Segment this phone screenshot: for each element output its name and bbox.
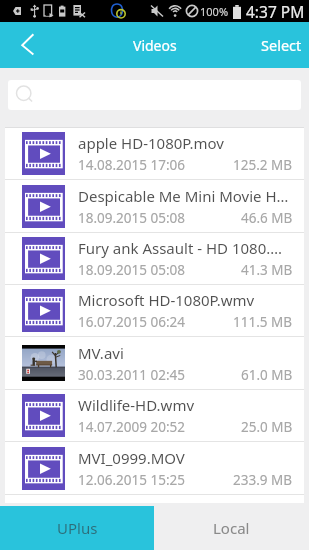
- button[interactable]: Despicable Me Mini Movie H…: [5, 180, 304, 232]
- staticText: 12.06.2015 15:25: [78, 471, 186, 489]
- staticText: 14.07.2009 20:52: [78, 418, 186, 436]
- staticText: UPlus: [57, 518, 98, 538]
- button[interactable]: Back: [0, 22, 48, 68]
- staticText: Local: [213, 518, 250, 538]
- button[interactable]: Microsoft HD-1080P.wmv: [5, 285, 304, 336]
- staticText: 18.09.2015 05:08: [78, 261, 186, 279]
- staticText: 111.5 MB: [233, 313, 293, 331]
- staticText: 46.6 MB: [241, 209, 293, 227]
- staticText: 16.07.2015 06:24: [78, 313, 186, 331]
- staticText: MVI_0999.MOV: [78, 448, 185, 468]
- button[interactable]: Local: [154, 506, 309, 550]
- staticText: 125.2 MB: [233, 156, 293, 174]
- staticText: Select: [261, 35, 302, 55]
- button[interactable]: Wildlife-HD.wmv: [5, 390, 304, 441]
- staticText: 233.9 MB: [233, 471, 293, 489]
- button[interactable]: UPlus: [0, 506, 154, 550]
- button[interactable]: MV.avi: [5, 337, 304, 389]
- staticText: 25.0 MB: [241, 418, 293, 436]
- staticText: 41.3 MB: [241, 261, 293, 279]
- staticText: Videos: [133, 36, 177, 55]
- button[interactable]: apple HD-1080P.mov: [5, 128, 304, 179]
- staticText: Despicable Me Mini Movie H…: [78, 186, 289, 206]
- staticText: Microsoft HD-1080P.wmv: [78, 290, 255, 310]
- staticText: 100%: [200, 4, 229, 19]
- staticText: 4:37 PM: [246, 1, 305, 22]
- staticText: 14.08.2015 17:06: [78, 156, 186, 174]
- staticText: apple HD-1080P.mov: [78, 133, 224, 153]
- staticText: 61.0 MB: [241, 366, 293, 384]
- staticText: 30.03.2011 02:45: [78, 366, 186, 384]
- staticText: MV.avi: [78, 343, 124, 363]
- staticText: 18.09.2015 05:08: [78, 209, 186, 227]
- button[interactable]: Select: [254, 22, 309, 68]
- staticText: Fury ank Assault - HD 1080….: [78, 238, 283, 258]
- button[interactable]: Fury ank Assault - HD 1080….: [5, 233, 304, 284]
- staticText: Wildlife-HD.wmv: [78, 395, 195, 415]
- button[interactable]: MVI_0999.MOV: [5, 442, 304, 494]
